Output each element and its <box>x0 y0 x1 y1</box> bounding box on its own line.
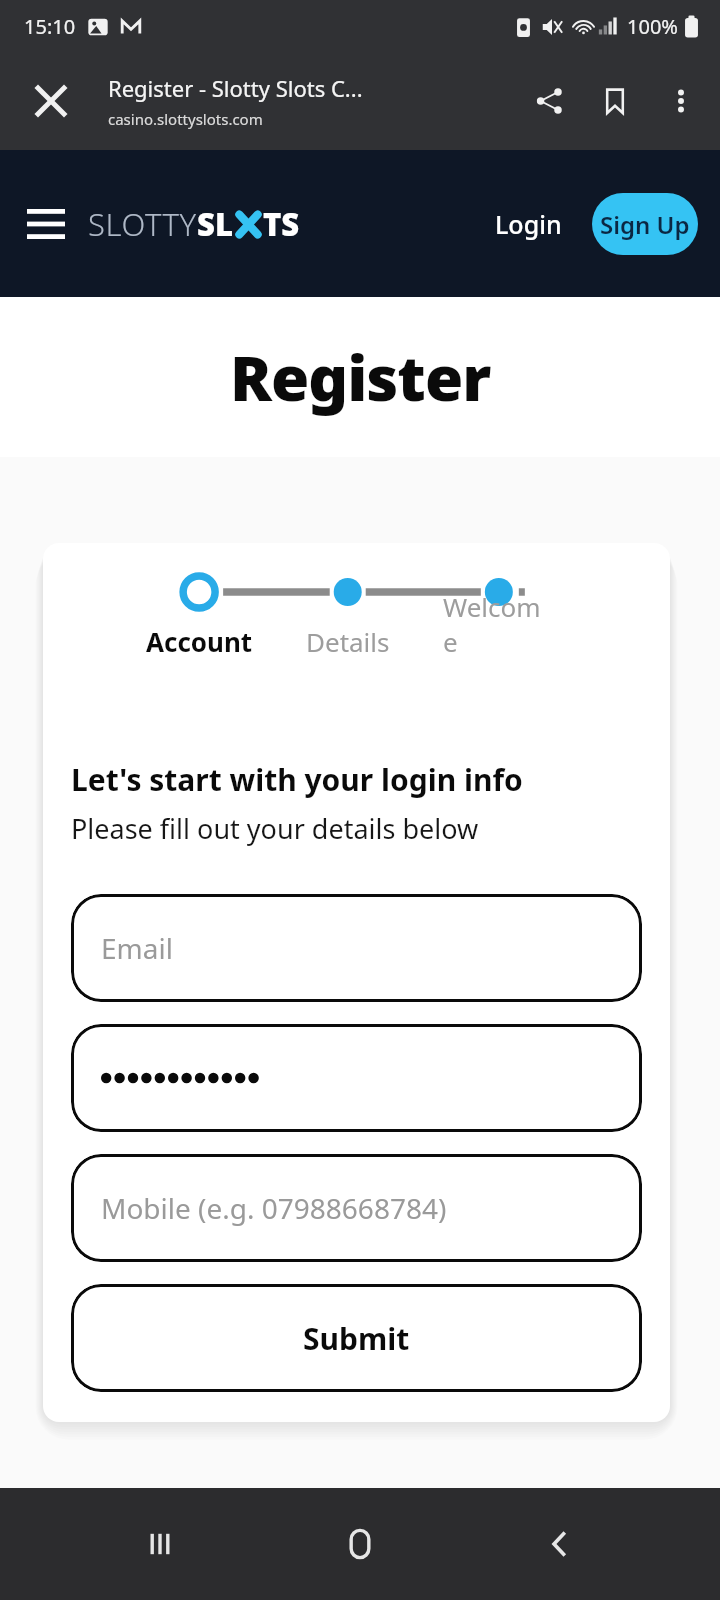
button[interactable]: More options <box>648 68 714 134</box>
staticText: TS <box>263 203 300 245</box>
staticText: SL <box>197 203 233 245</box>
staticText: Submit <box>303 1318 410 1359</box>
staticText: 100% <box>627 13 678 40</box>
staticText: Login <box>495 207 562 241</box>
button[interactable]: Email <box>71 894 642 1002</box>
button[interactable]: Sign Up <box>592 193 698 255</box>
button[interactable]: Back <box>520 1504 600 1584</box>
staticText: Let's start with your login info <box>71 759 523 800</box>
staticText: Sign Up <box>600 208 690 241</box>
button[interactable]: Recents <box>120 1504 200 1584</box>
staticText: SLOTTY <box>88 203 197 245</box>
staticText: 15:10 <box>24 13 76 40</box>
button[interactable] <box>71 1024 642 1132</box>
staticText: Account <box>146 624 253 659</box>
staticText: Welcome <box>443 589 555 659</box>
staticText: Mobile (e.g. 07988668784) <box>101 1189 447 1227</box>
button[interactable]: Bookmark <box>582 68 648 134</box>
staticText: Please fill out your details below <box>71 810 479 847</box>
staticText: Register <box>230 335 491 419</box>
staticText: casino.slottyslots.com <box>108 109 263 129</box>
button[interactable]: Home <box>320 1504 400 1584</box>
button[interactable]: Menu <box>10 188 82 260</box>
button[interactable]: Share <box>516 68 582 134</box>
staticText: Email <box>101 929 173 967</box>
button[interactable]: Mobile (e.g. 07988668784) <box>71 1154 642 1262</box>
button[interactable]: Close <box>14 64 88 138</box>
staticText: Details <box>306 624 390 659</box>
button[interactable]: Login <box>483 195 574 253</box>
staticText: Register - Slotty Slots C... <box>108 73 363 103</box>
button[interactable]: Submit <box>71 1284 642 1392</box>
